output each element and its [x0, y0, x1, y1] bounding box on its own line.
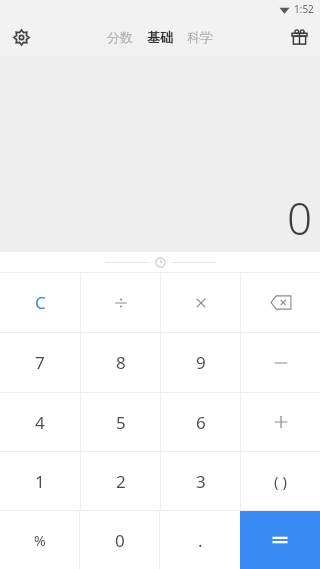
button[interactable]: %	[0, 511, 79, 569]
staticText: ( )	[274, 471, 287, 491]
button[interactable]: Settings	[6, 22, 36, 52]
staticText: 3	[196, 470, 206, 493]
staticText: 9	[196, 351, 206, 374]
staticText: .	[198, 529, 203, 552]
button[interactable]: Multiply	[161, 273, 240, 332]
staticText: 1	[35, 470, 45, 493]
button[interactable]: 8	[81, 333, 160, 392]
staticText: 科学	[187, 29, 213, 45]
staticText: 0	[115, 529, 125, 552]
button[interactable]: Plus	[241, 393, 320, 451]
staticText: 8	[116, 351, 126, 374]
button[interactable]: 分数	[100, 25, 140, 49]
button[interactable]: Equals	[240, 511, 320, 569]
button[interactable]: 基础	[140, 25, 180, 49]
button[interactable]: 0	[80, 511, 159, 569]
button[interactable]: Backspace	[241, 273, 320, 332]
staticText: %	[34, 531, 46, 550]
staticText: 5	[116, 411, 126, 434]
staticText: 6	[196, 411, 206, 434]
button[interactable]: C	[0, 273, 80, 332]
button[interactable]: 7	[0, 333, 80, 392]
button[interactable]: 9	[161, 333, 240, 392]
staticText: 1:52	[294, 2, 314, 16]
staticText: C	[35, 291, 46, 314]
button[interactable]: Minus	[241, 333, 320, 392]
button[interactable]: 6	[161, 393, 240, 451]
button[interactable]: Gift	[284, 22, 314, 52]
staticText: 4	[35, 411, 45, 434]
button[interactable]: 3	[161, 452, 240, 510]
staticText: 分数	[107, 29, 133, 45]
staticText: 基础	[147, 29, 173, 45]
staticText: 0	[286, 188, 312, 248]
staticText: 2	[116, 470, 126, 493]
button[interactable]: History	[0, 252, 320, 272]
button[interactable]: 科学	[180, 25, 220, 49]
button[interactable]: 5	[81, 393, 160, 451]
button[interactable]: .	[160, 511, 240, 569]
button[interactable]: Divide	[81, 273, 160, 332]
staticText: 7	[35, 351, 45, 374]
button[interactable]: ( )	[241, 452, 320, 510]
button[interactable]: 4	[0, 393, 80, 451]
button[interactable]: 1	[0, 452, 80, 510]
button[interactable]: 2	[81, 452, 160, 510]
